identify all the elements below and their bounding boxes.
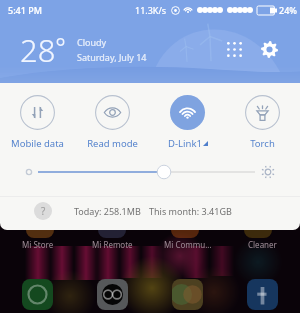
staticText: 5:41 PM [8, 4, 42, 16]
button[interactable]: Torch [225, 95, 300, 150]
button[interactable]: Settings [256, 36, 282, 62]
button[interactable]: All apps [221, 36, 247, 62]
staticText: Torch [250, 137, 275, 150]
button[interactable]: App [97, 279, 128, 310]
staticText: ? [41, 204, 46, 218]
button[interactable]: Brightness [0, 160, 300, 190]
staticText: 11.3K/s [135, 4, 167, 16]
staticText: Mobile data [11, 137, 64, 150]
button[interactable]: Facebook [247, 279, 278, 310]
staticText: 24% [279, 4, 297, 16]
button[interactable]: Read mode [75, 95, 150, 150]
staticText: Today: 258.1MB [74, 205, 141, 217]
staticText: 28 [20, 29, 56, 71]
staticText: Mi Store [22, 239, 54, 250]
button[interactable]: WhatsApp [22, 279, 53, 310]
staticText: Saturday, July 14 [77, 51, 147, 63]
staticText: Read mode [87, 137, 138, 150]
staticText: Mi Remote [92, 239, 133, 250]
button[interactable]: Mobile data [0, 95, 75, 150]
staticText: D-Link1 [168, 137, 202, 150]
button[interactable]: D-Link1 [150, 95, 225, 150]
staticText: Cloudy [77, 36, 107, 48]
staticText: This month: 3.41GB [149, 205, 232, 217]
button[interactable]: Game [172, 279, 203, 310]
button[interactable]: Help [34, 202, 52, 220]
staticText: Cleaner [248, 239, 277, 250]
staticText: Mi Commu... [164, 239, 212, 250]
